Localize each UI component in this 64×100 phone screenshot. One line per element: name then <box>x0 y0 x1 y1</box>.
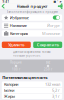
staticText: Белки <box>4 87 14 93</box>
button[interactable]: Сохранить <box>33 42 62 48</box>
staticText: Заполните информацию о продукте <box>6 10 57 14</box>
staticText: Вес <box>46 61 50 64</box>
staticText: Категория <box>10 31 28 36</box>
staticText: Название <box>10 23 27 28</box>
staticText: 3,1 г <box>52 93 60 99</box>
staticText: Питательная ценность <box>2 75 47 80</box>
staticText: Избранное <box>10 15 29 20</box>
staticText: Удалить <box>8 42 24 47</box>
staticText: Данные сохраняются только на вашем устро… <box>13 50 51 57</box>
staticText: 5,2 г <box>52 87 60 93</box>
staticText: ▮▮ ⌃ ▰ <box>54 0 62 3</box>
staticText: Порция <box>10 61 22 64</box>
button[interactable]: Порция <box>0 59 32 72</box>
staticText: 132 ккал <box>45 82 60 87</box>
button[interactable]: Название <box>2 22 62 29</box>
staticText: 100 г <box>12 68 20 71</box>
button[interactable]: Избранное <box>2 14 62 21</box>
button[interactable]: Вес <box>32 59 64 72</box>
staticText: 9:41 <box>2 0 9 3</box>
staticText: Молочное <box>42 31 60 36</box>
button[interactable]: Категория <box>2 30 62 37</box>
staticText: 250 г <box>44 68 52 71</box>
staticText: Жиры <box>4 93 15 99</box>
staticText: Новый продукт <box>16 3 47 9</box>
staticText: Йогурт <box>47 23 60 28</box>
button[interactable]: Share <box>56 3 64 9</box>
button[interactable]: Back <box>0 3 6 9</box>
button[interactable]: Удалить <box>2 42 31 48</box>
staticText: Калории <box>4 82 18 87</box>
staticText: Сохранить <box>37 42 59 47</box>
